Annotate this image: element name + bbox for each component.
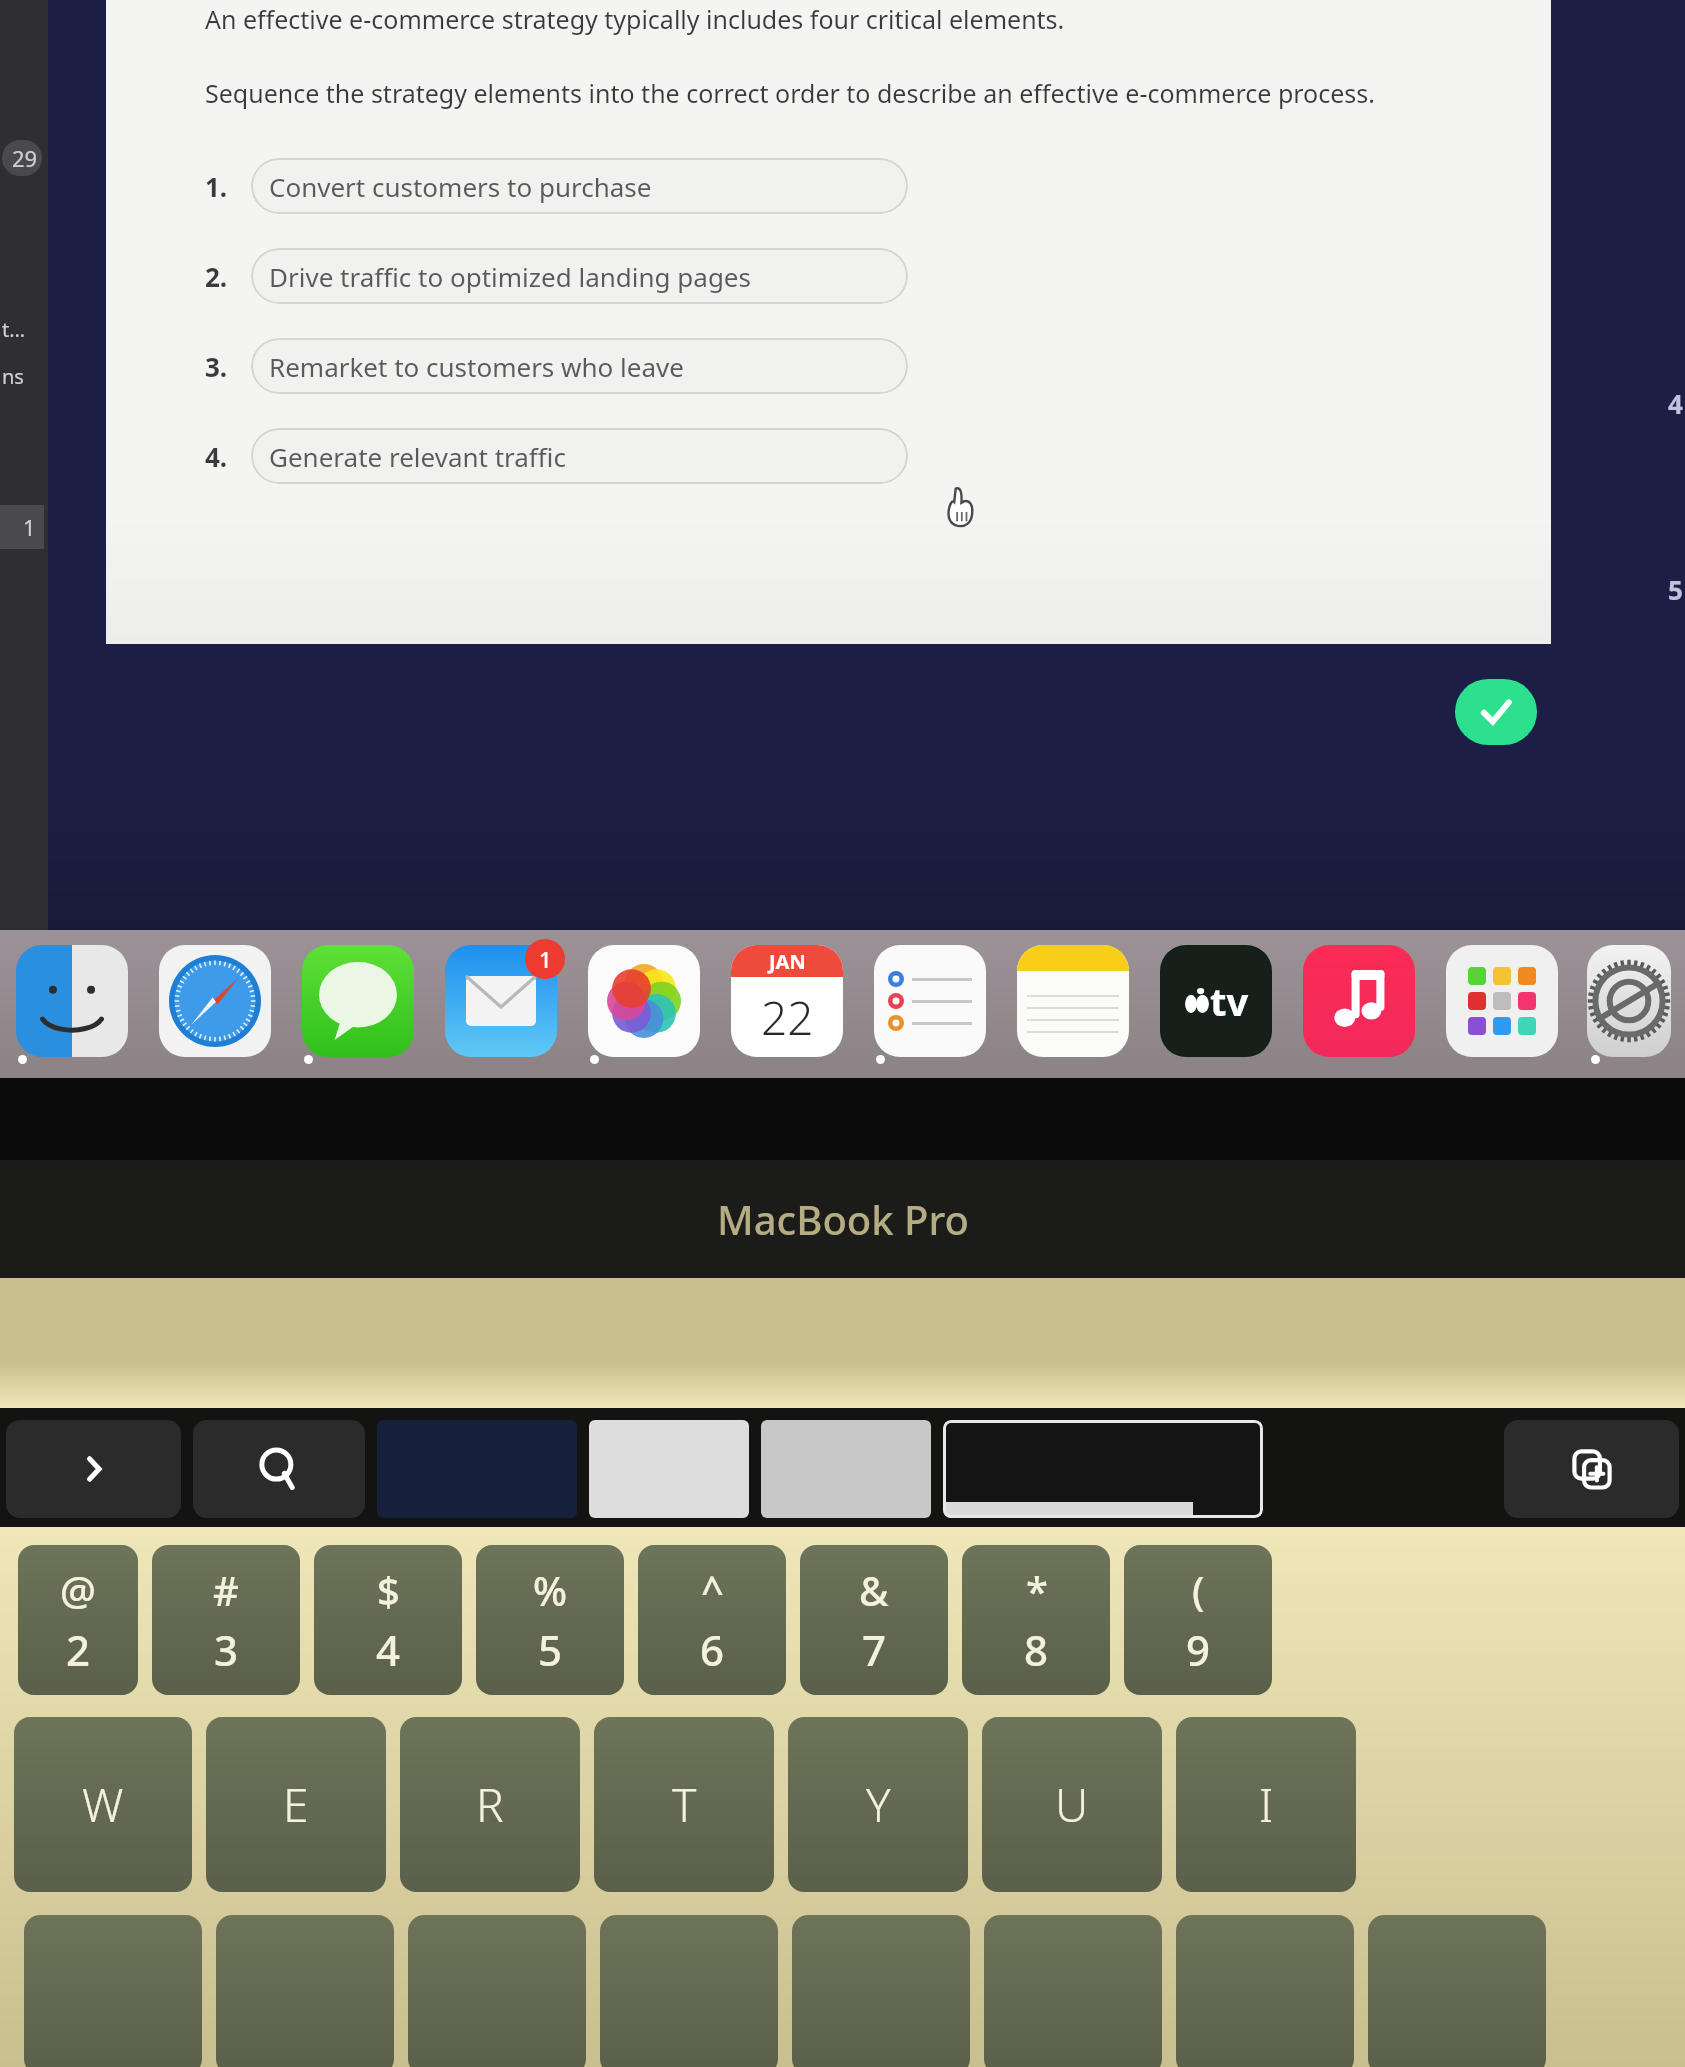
button[interactable]: Dock app <box>729 943 844 1058</box>
button[interactable]: Expand control strip <box>6 1420 181 1518</box>
button[interactable]: Dock app <box>586 943 701 1058</box>
staticText: Convert customers to purchase <box>269 169 652 204</box>
staticText: An effective e-commerce strategy typical… <box>205 2 1065 36</box>
staticText: & <box>859 1563 889 1617</box>
button[interactable]: Submit answer <box>1455 679 1537 745</box>
button[interactable] <box>984 1915 1162 2067</box>
button[interactable] <box>1176 1915 1354 2067</box>
button[interactable]: T <box>594 1717 774 1892</box>
button[interactable] <box>1368 1915 1546 2067</box>
staticText: 9 <box>1186 1621 1211 1678</box>
staticText: I <box>1259 1773 1274 1836</box>
button[interactable]: Dock app <box>157 943 272 1058</box>
button[interactable]: Dock app <box>1587 943 1671 1058</box>
staticText: 4 <box>376 1621 401 1678</box>
staticText: MacBook Pro <box>717 1192 969 1246</box>
staticText: 2 <box>66 1621 91 1678</box>
button[interactable]: & <box>800 1545 948 1695</box>
staticText: % <box>533 1563 568 1617</box>
staticText: 8 <box>1024 1621 1049 1678</box>
button[interactable] <box>24 1915 202 2067</box>
button[interactable] <box>761 1420 931 1518</box>
button[interactable]: % <box>476 1545 624 1695</box>
staticText: # <box>213 1563 239 1617</box>
staticText: Generate relevant traffic <box>269 439 566 474</box>
button[interactable]: ( <box>1124 1545 1272 1695</box>
button[interactable]: E <box>206 1717 386 1892</box>
staticText: R <box>476 1773 504 1836</box>
staticText: Remarket to customers who leave <box>269 349 684 384</box>
staticText: 1 <box>23 512 36 542</box>
staticText: T <box>672 1773 697 1836</box>
staticText: 29 <box>12 143 38 173</box>
button[interactable] <box>943 1420 1263 1518</box>
button[interactable] <box>589 1420 749 1518</box>
staticText: 4 <box>1668 386 1683 421</box>
button[interactable]: R <box>400 1717 580 1892</box>
button[interactable]: Search <box>193 1420 365 1518</box>
staticText: Sequence the strategy elements into the … <box>205 76 1375 110</box>
button[interactable]: Dock app <box>1158 943 1273 1058</box>
staticText: $ <box>377 1563 400 1617</box>
button[interactable]: $ <box>314 1545 462 1695</box>
button[interactable]: Convert customers to purchase <box>251 158 908 214</box>
button[interactable]: Dock app <box>1444 943 1559 1058</box>
button[interactable] <box>600 1915 778 2067</box>
staticText: JAN <box>769 948 806 975</box>
button[interactable]: @ <box>18 1545 138 1695</box>
button[interactable]: Dock app <box>872 943 987 1058</box>
staticText: E <box>283 1773 309 1836</box>
button[interactable]: Drive traffic to optimized landing pages <box>251 248 908 304</box>
button[interactable]: I <box>1176 1717 1356 1892</box>
staticText: ^ <box>701 1563 724 1617</box>
staticText: 3. <box>205 349 228 384</box>
button[interactable]: Dock app <box>14 943 129 1058</box>
button[interactable] <box>792 1915 970 2067</box>
button[interactable]: Dock app <box>443 943 558 1058</box>
staticText: 3 <box>214 1621 239 1678</box>
staticText: Drive traffic to optimized landing pages <box>269 259 751 294</box>
button[interactable]: * <box>962 1545 1110 1695</box>
button[interactable] <box>216 1915 394 2067</box>
staticText: @ <box>60 1563 96 1617</box>
staticText: 6 <box>700 1621 725 1678</box>
button[interactable]: U <box>982 1717 1162 1892</box>
staticText: * <box>1026 1563 1048 1617</box>
button[interactable]: Dock app <box>300 943 415 1058</box>
button[interactable]: # <box>152 1545 300 1695</box>
staticText: tv <box>1210 975 1249 1027</box>
button[interactable]: Dock app <box>1301 943 1416 1058</box>
staticText: 5 <box>1668 572 1683 607</box>
button[interactable]: New tab <box>1504 1420 1679 1518</box>
staticText: 7 <box>862 1621 887 1678</box>
staticText: Y <box>866 1773 891 1836</box>
button[interactable]: ^ <box>638 1545 786 1695</box>
staticText: 1 <box>539 944 552 974</box>
button[interactable]: Dock app <box>1015 943 1130 1058</box>
staticText: 4. <box>205 439 228 474</box>
staticText: 5 <box>538 1621 563 1678</box>
staticText: ( <box>1192 1563 1205 1617</box>
staticText: 2. <box>205 259 228 294</box>
staticText: U <box>1055 1773 1089 1836</box>
staticText: W <box>82 1773 124 1836</box>
button[interactable]: Generate relevant traffic <box>251 428 908 484</box>
button[interactable]: W <box>14 1717 192 1892</box>
button[interactable] <box>408 1915 586 2067</box>
staticText: ns <box>2 363 24 390</box>
button[interactable]: Y <box>788 1717 968 1892</box>
button[interactable]: Remarket to customers who leave <box>251 338 908 394</box>
staticText: 22 <box>761 986 814 1049</box>
staticText: 1. <box>205 169 228 204</box>
staticText: t… <box>2 316 26 343</box>
